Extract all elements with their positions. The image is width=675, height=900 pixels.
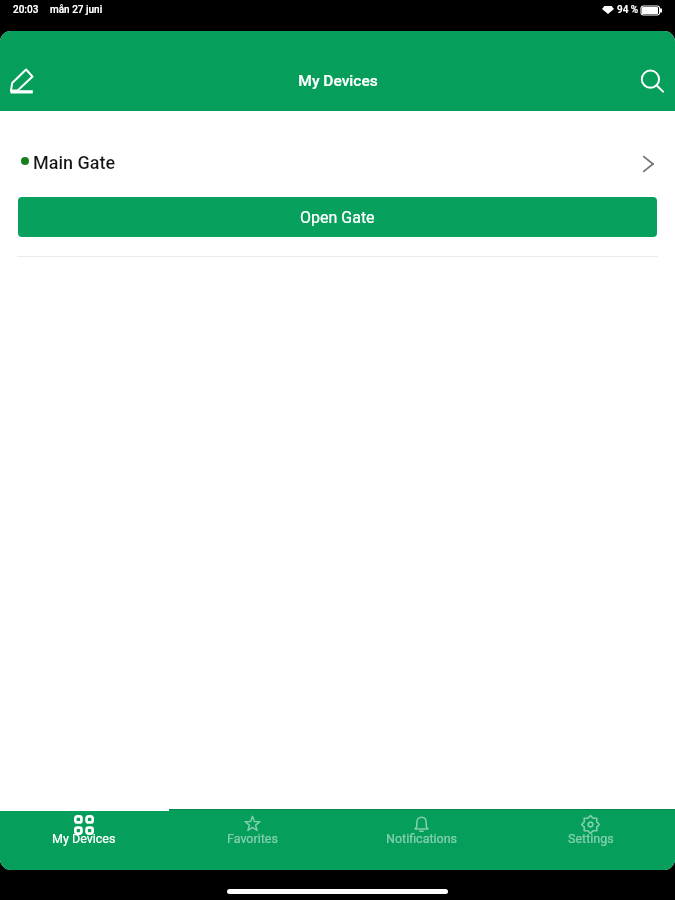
button[interactable]: Open Gate: [18, 197, 657, 237]
button[interactable]: Notifications: [337, 809, 506, 870]
staticText: Favorites: [227, 831, 278, 846]
button[interactable]: Main Gate: [0, 134, 675, 190]
button[interactable]: My Devices: [0, 809, 168, 870]
staticText: Main Gate: [33, 152, 116, 173]
staticText: Settings: [568, 831, 614, 846]
staticText: mån 27 juni: [50, 4, 103, 16]
staticText: My Devices: [298, 72, 378, 90]
staticText: Notifications: [386, 831, 458, 846]
button[interactable]: Settings: [506, 809, 675, 870]
button[interactable]: Search: [630, 59, 674, 103]
button[interactable]: Favorites: [168, 809, 337, 870]
staticText: 94 %: [617, 4, 639, 16]
staticText: My Devices: [52, 831, 116, 846]
staticText: Open Gate: [300, 208, 375, 227]
button[interactable]: Edit: [0, 59, 44, 103]
staticText: 20:03: [13, 4, 39, 16]
